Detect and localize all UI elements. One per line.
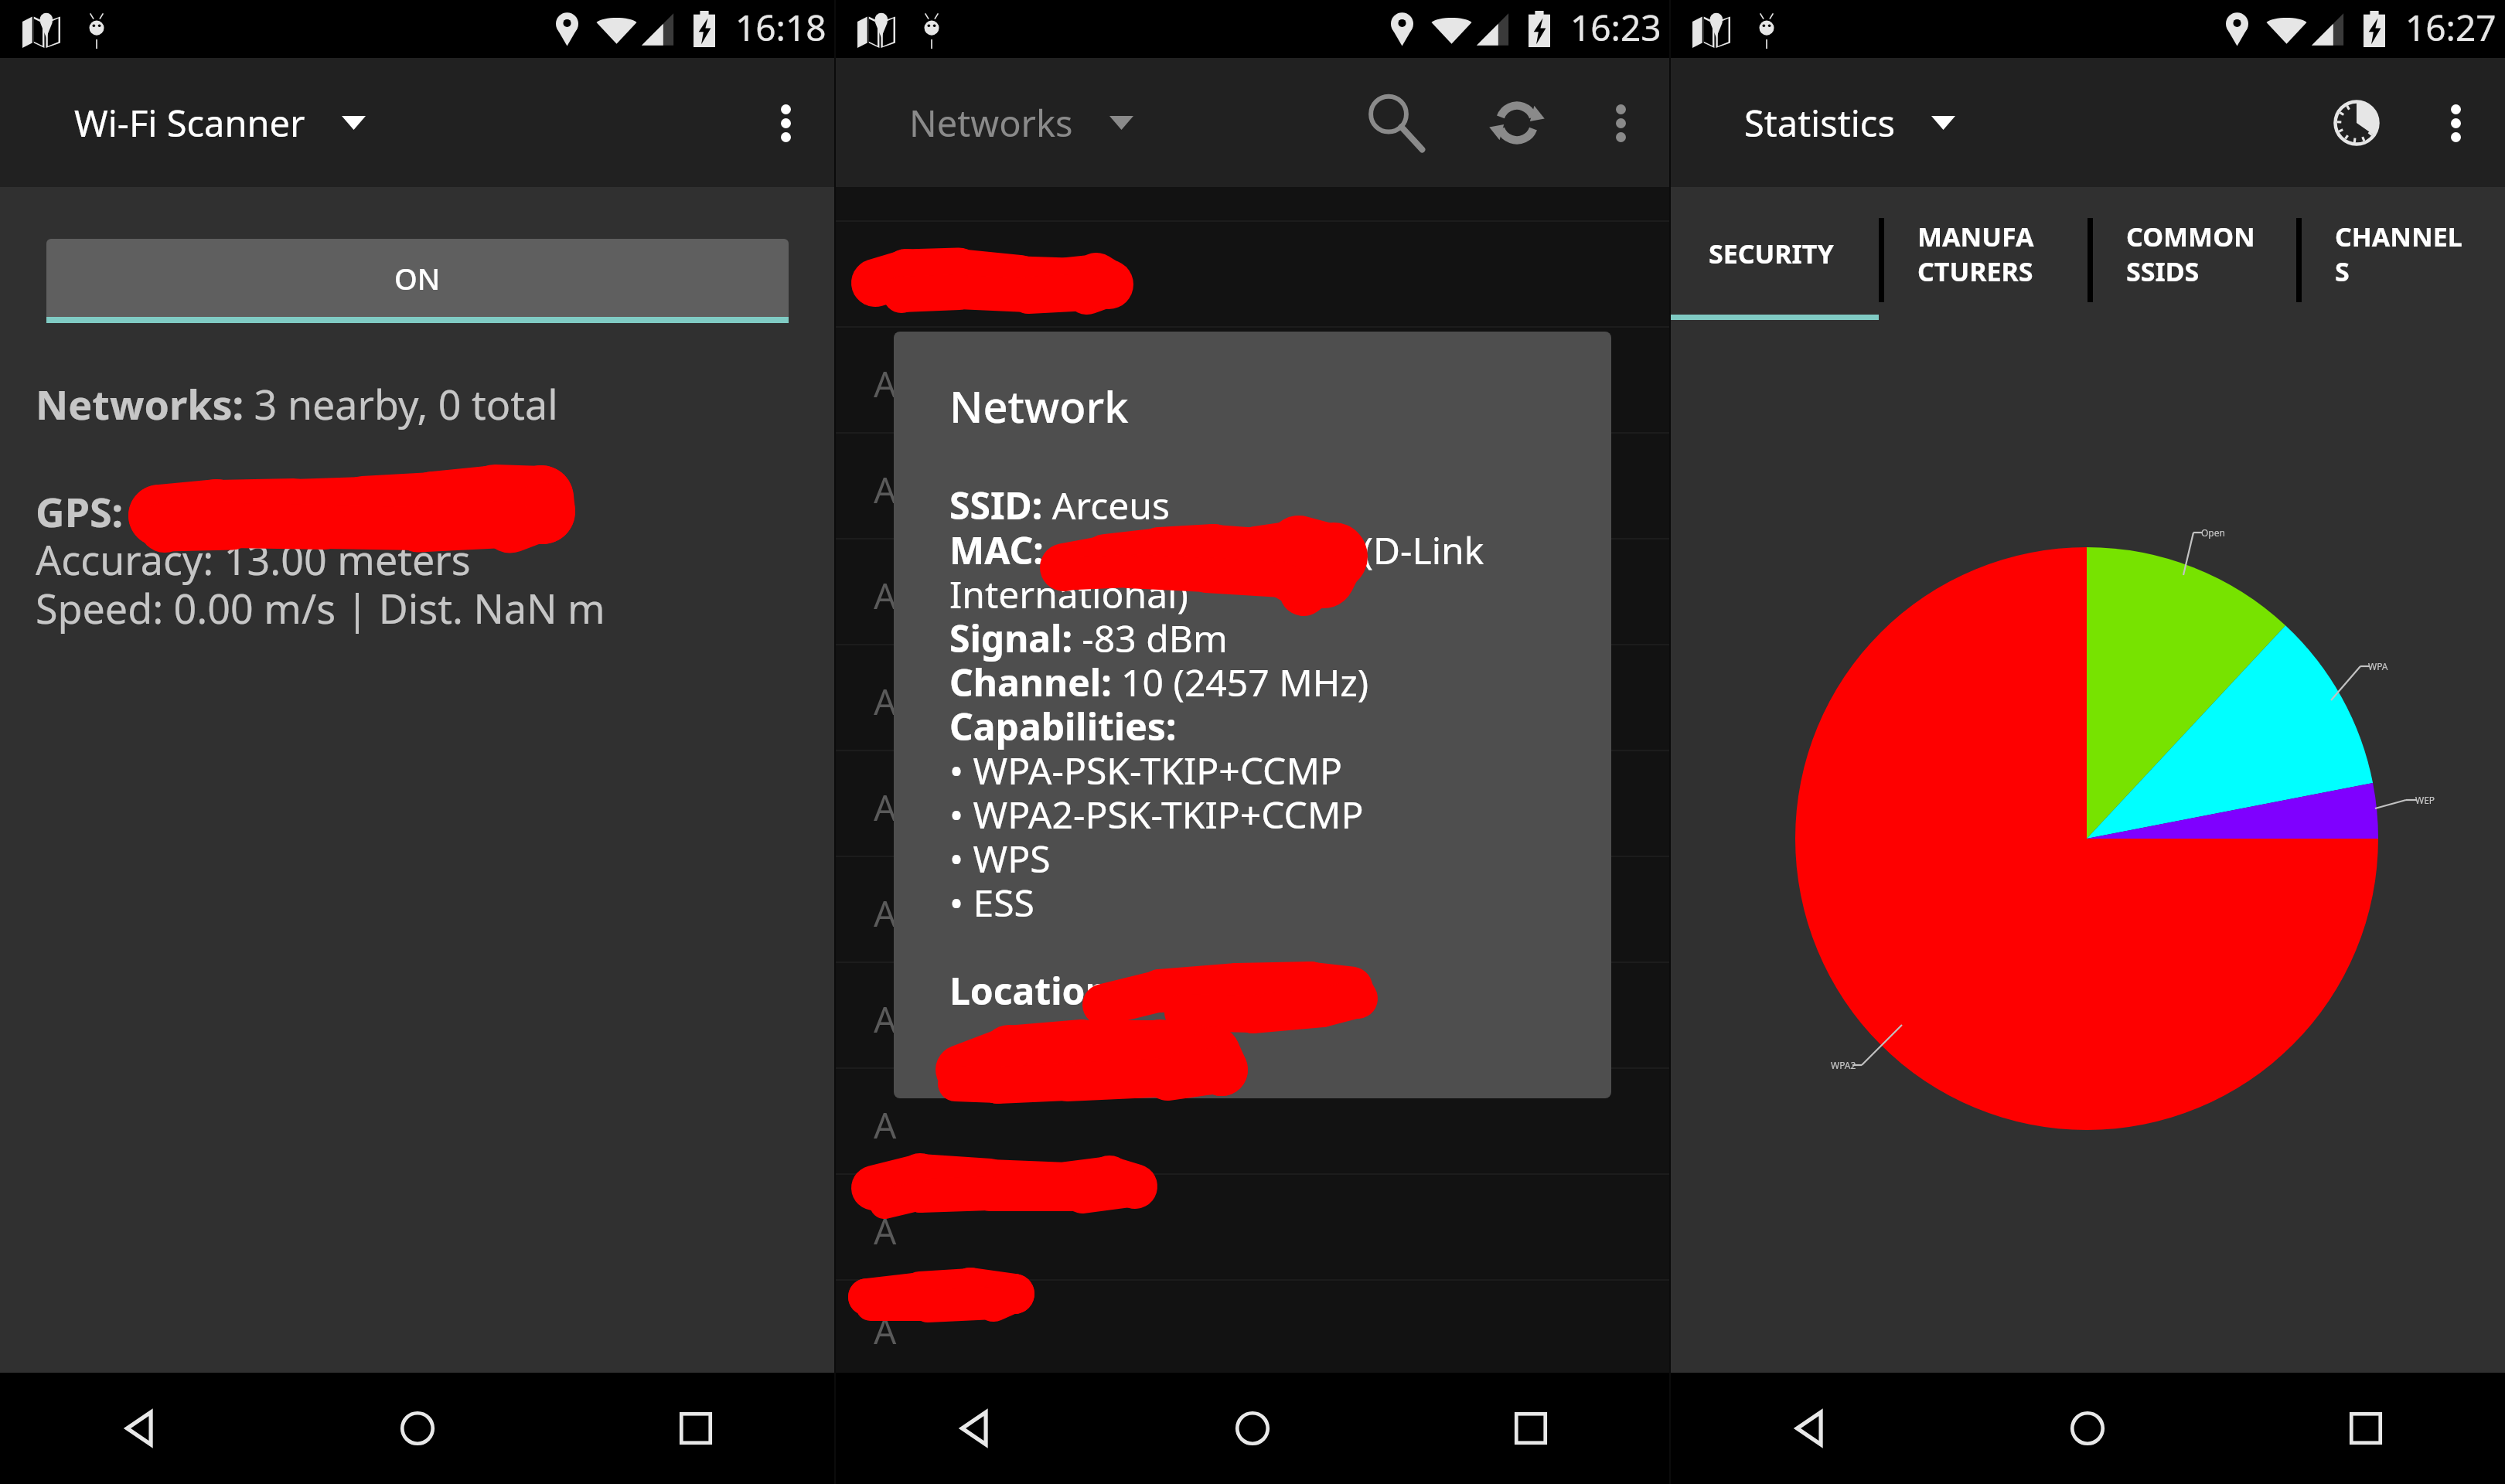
- staticText: WEP: [2415, 794, 2435, 806]
- button[interactable]: A: [835, 1281, 1670, 1373]
- staticText: 16:23: [1570, 3, 1661, 52]
- staticText: A: [874, 359, 897, 408]
- staticText: Networks: 3 nearby, 0 total: [36, 376, 558, 431]
- button[interactable]: Statistics: [1744, 58, 1955, 187]
- staticText: SSID: Arceus MAC: (D-Link International)…: [949, 480, 1588, 1016]
- button[interactable]: Wi-Fi Scanner: [74, 58, 366, 187]
- staticText: A: [874, 571, 897, 620]
- staticText: ON: [394, 258, 441, 298]
- button[interactable]: SECURITY: [1670, 187, 1879, 320]
- button[interactable]: Home: [278, 1373, 557, 1484]
- staticText: 16:18: [735, 3, 826, 52]
- staticText: SECURITY: [1709, 236, 1834, 271]
- button[interactable]: Back: [835, 1373, 1113, 1484]
- button[interactable]: Refresh: [1461, 67, 1573, 179]
- button[interactable]: A: [835, 751, 1670, 856]
- button[interactable]: More options: [2400, 67, 2505, 179]
- button[interactable]: A: [835, 1175, 1670, 1279]
- staticText: Networks: [909, 98, 1073, 148]
- staticText: A: [874, 783, 897, 832]
- button[interactable]: A: [835, 434, 1670, 538]
- staticText: COMMON SSIDS: [2126, 219, 2255, 288]
- staticText: GPS: Accuracy: 13.00 meters Speed: 0.00 …: [36, 484, 605, 636]
- button[interactable]: Recents: [557, 1373, 835, 1484]
- button[interactable]: Recents: [2227, 1373, 2505, 1484]
- staticText: A: [874, 889, 897, 938]
- button[interactable]: Chart: [2301, 67, 2412, 179]
- staticText: Statistics: [1744, 98, 1895, 148]
- button[interactable]: More options: [730, 67, 841, 179]
- staticText: Wi-Fi Scanner: [74, 98, 305, 148]
- staticText: CHANNEL S: [2335, 219, 2462, 288]
- staticText: A: [874, 1101, 897, 1149]
- button[interactable]: More options: [1565, 67, 1676, 179]
- button[interactable]: Recents: [1392, 1373, 1670, 1484]
- staticText: A: [874, 1207, 897, 1255]
- button[interactable]: Home: [1113, 1373, 1392, 1484]
- staticText: MANUFA CTURERS: [1917, 219, 2034, 288]
- button[interactable]: COMMON SSIDS: [2087, 187, 2296, 320]
- staticText: 16:27: [2405, 3, 2496, 52]
- button[interactable]: Back: [1670, 1373, 1948, 1484]
- staticText: WPA: [2368, 660, 2388, 672]
- button[interactable]: A: [835, 1069, 1670, 1173]
- staticText: Open: [2201, 526, 2225, 539]
- staticText: A: [874, 677, 897, 726]
- button[interactable]: Search: [1340, 67, 1451, 179]
- button[interactable]: MANUFA CTURERS: [1879, 187, 2087, 320]
- button[interactable]: Back: [0, 1373, 278, 1484]
- staticText: A: [874, 254, 897, 302]
- button[interactable]: A: [835, 645, 1670, 750]
- button[interactable]: A: [835, 328, 1670, 432]
- staticText: WPA2: [1831, 1059, 1856, 1071]
- button[interactable]: A: [835, 963, 1670, 1067]
- button[interactable]: CHANNEL S: [2296, 187, 2505, 320]
- staticText: A: [874, 995, 897, 1043]
- button[interactable]: A: [835, 539, 1670, 644]
- button[interactable]: A: [835, 857, 1670, 962]
- staticText: A: [874, 1306, 897, 1355]
- button[interactable]: A: [835, 222, 1670, 326]
- button[interactable]: ON: [46, 239, 789, 323]
- staticText: Network: [949, 376, 1129, 435]
- staticText: A: [874, 465, 897, 514]
- button[interactable]: Home: [1948, 1373, 2227, 1484]
- button[interactable]: Networks: [909, 58, 1133, 187]
